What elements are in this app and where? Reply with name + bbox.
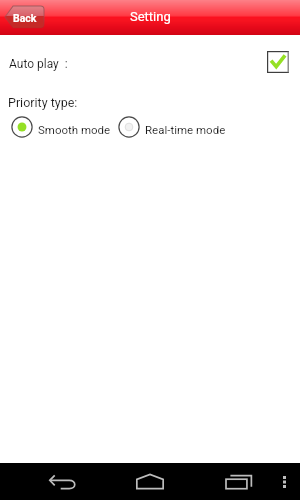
button[interactable]: Recent apps bbox=[214, 463, 264, 500]
button[interactable]: Back bbox=[5, 6, 44, 28]
button[interactable]: Smooth mode bbox=[11, 116, 111, 138]
staticText: Setting bbox=[130, 9, 171, 24]
staticText: Auto play : bbox=[9, 57, 68, 71]
staticText: Real-time mode bbox=[145, 123, 226, 136]
staticText: Smooth mode bbox=[38, 123, 111, 136]
staticText: Back bbox=[13, 12, 37, 24]
button[interactable]: Real-time mode bbox=[118, 116, 226, 138]
button[interactable]: Auto play checkbox bbox=[267, 51, 289, 73]
button[interactable]: Home bbox=[125, 463, 175, 500]
button[interactable]: Back bbox=[37, 463, 87, 500]
staticText: Priority type: bbox=[8, 95, 78, 110]
button[interactable]: More options bbox=[273, 463, 295, 500]
